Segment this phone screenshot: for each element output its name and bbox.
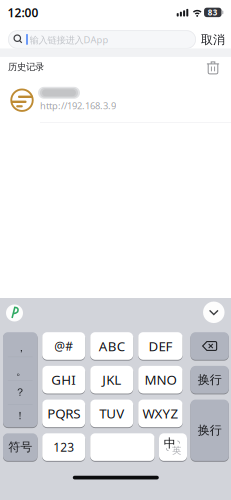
button[interactable] [8, 30, 196, 49]
button[interactable]: WXYZ [138, 399, 183, 428]
button[interactable]: http://192.168.3.9 [0, 0, 231, 500]
button[interactable]: JKL [90, 365, 133, 394]
button[interactable]: ， [3, 332, 37, 428]
staticText: ？ [15, 386, 26, 399]
staticText: PQRS [47, 404, 80, 422]
staticText: ！ [15, 409, 26, 422]
button[interactable]: 换行 [190, 399, 229, 461]
button[interactable]: PQRS [42, 399, 85, 428]
button[interactable]: 换行 [190, 365, 229, 394]
staticText: 换行 [198, 372, 222, 387]
staticText: ， [16, 341, 27, 354]
staticText: DEF [148, 337, 172, 355]
staticText: TUV [99, 404, 124, 422]
button[interactable]: @# [42, 332, 85, 360]
button[interactable]: ABC [90, 332, 133, 360]
staticText: WXYZ [142, 404, 178, 422]
staticText: 。 [16, 365, 27, 378]
staticText: MNO [144, 371, 176, 388]
button[interactable]: 123 [42, 433, 85, 461]
staticText: 83 [208, 7, 218, 18]
button[interactable]: GHI [42, 365, 85, 394]
staticText: 历史记录 [8, 61, 44, 73]
staticText: 符号 [8, 440, 32, 454]
button[interactable] [0, 0, 231, 500]
button[interactable] [0, 0, 231, 500]
button[interactable]: 符号 [3, 433, 37, 461]
staticText: 英 [172, 445, 181, 456]
staticText: 取消 [201, 32, 225, 47]
button[interactable]: 中 [159, 433, 187, 461]
staticText: GHI [51, 371, 76, 388]
staticText: @# [54, 338, 73, 354]
staticText: JKL [102, 371, 121, 388]
button[interactable] [190, 332, 229, 360]
button[interactable] [0, 0, 231, 500]
staticText: ABC [99, 337, 125, 355]
staticText: 123 [53, 439, 74, 455]
button[interactable] [90, 433, 155, 461]
button[interactable]: 取消 [200, 33, 226, 47]
button[interactable]: TUV [90, 399, 133, 428]
button[interactable]: DEF [138, 332, 183, 360]
staticText: 中 [164, 436, 176, 451]
staticText: 输入链接进入DApp [29, 33, 108, 46]
staticText: 换行 [198, 423, 222, 438]
staticText: http://192.168.3.9 [40, 99, 116, 112]
staticText: 12:00 [7, 4, 38, 20]
button[interactable]: MNO [138, 365, 183, 394]
